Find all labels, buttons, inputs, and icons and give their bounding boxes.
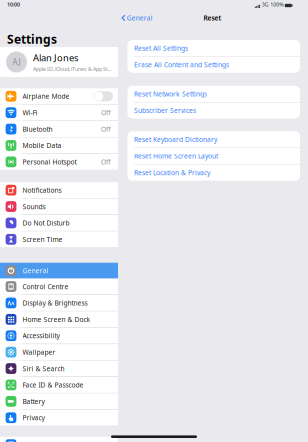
staticText: Wallpaper: [23, 348, 56, 357]
staticText: Off: [101, 108, 111, 117]
button[interactable]: General: [118, 11, 157, 25]
button[interactable]: Battery: [0, 393, 118, 409]
staticText: Battery: [23, 397, 45, 406]
staticText: AJ: [12, 57, 20, 67]
staticText: Reset Location & Privacy: [134, 168, 210, 177]
button[interactable]: Home Screen & Dock: [0, 311, 118, 327]
staticText: Reset Network Settings: [134, 89, 207, 98]
button[interactable]: Sounds: [0, 199, 118, 214]
staticText: General: [127, 14, 153, 22]
button[interactable]: Subscriber Services: [127, 102, 300, 119]
button[interactable]: Control Centre: [0, 279, 118, 294]
button[interactable]: Accessibility: [0, 328, 118, 344]
button[interactable]: Personal Hotspot: [0, 154, 118, 170]
button[interactable]: Wi-Fi: [0, 105, 118, 121]
button[interactable]: AJ: [0, 47, 118, 77]
staticText: General: [23, 266, 49, 275]
staticText: Off: [101, 125, 111, 133]
staticText: Mobile Data: [23, 141, 62, 150]
staticText: Notifications: [23, 186, 62, 195]
button[interactable]: App Store: [0, 437, 118, 442]
staticText: Privacy: [23, 413, 45, 422]
staticText: Wi-Fi: [23, 108, 38, 117]
staticText: 3G: [262, 1, 269, 8]
button[interactable]: Privacy: [0, 410, 118, 426]
button[interactable]: Screen Time: [0, 231, 118, 247]
button[interactable]: Do Not Disturb: [0, 215, 118, 231]
staticText: Face ID & Passcode: [23, 380, 84, 389]
staticText: Reset Keyboard Dictionary: [134, 135, 217, 144]
staticText: Erase All Content and Settings: [134, 60, 229, 69]
staticText: 10:00: [7, 1, 20, 8]
staticText: Subscriber Services: [134, 106, 196, 115]
staticText: Display & Brightness: [23, 298, 88, 307]
staticText: Screen Time: [23, 235, 63, 244]
staticText: Settings: [7, 31, 57, 47]
staticText: Control Centre: [23, 282, 69, 291]
button[interactable]: Face ID & Passcode: [0, 377, 118, 393]
button[interactable]: Notifications: [0, 182, 118, 198]
staticText: Home Screen & Dock: [23, 315, 91, 324]
button[interactable]: General: [0, 263, 118, 279]
button[interactable]: Reset Network Settings: [127, 86, 300, 102]
staticText: Reset Home Screen Layout: [134, 152, 218, 160]
staticText: Airplane Mode: [23, 92, 70, 101]
button[interactable]: Erase All Content and Settings: [127, 57, 300, 73]
staticText: Siri & Search: [23, 364, 65, 373]
staticText: Reset: [203, 14, 221, 22]
staticText: Off: [101, 157, 111, 166]
staticText: Do Not Disturb: [23, 218, 70, 227]
staticText: Alan Jones: [33, 51, 78, 64]
staticText: Accessibility: [23, 331, 60, 340]
button[interactable]: Wallpaper: [0, 344, 118, 360]
button[interactable]: Reset Location & Privacy: [127, 164, 300, 181]
staticText: 100%: [270, 1, 283, 8]
staticText: Personal Hotspot: [23, 157, 77, 166]
button[interactable]: Airplane Mode: [0, 88, 118, 104]
staticText: Reset All Settings: [134, 44, 188, 53]
button[interactable]: Bluetooth: [0, 121, 118, 137]
button[interactable]: Display & Brightness: [0, 295, 118, 311]
staticText: Apple ID, iCloud, iTunes & App St...: [33, 65, 111, 73]
staticText: Sounds: [23, 202, 46, 211]
button[interactable]: Reset Home Screen Layout: [127, 148, 300, 164]
button[interactable]: Reset All Settings: [127, 40, 300, 56]
button[interactable]: Mobile Data: [0, 137, 118, 153]
staticText: Bluetooth: [23, 125, 53, 133]
button[interactable]: Siri & Search: [0, 361, 118, 376]
button[interactable]: Reset Keyboard Dictionary: [127, 131, 300, 147]
